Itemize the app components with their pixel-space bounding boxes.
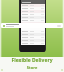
button[interactable] [21, 36, 45, 39]
button[interactable] [21, 7, 45, 10]
button[interactable] [21, 39, 45, 42]
button[interactable] [21, 19, 45, 22]
button[interactable] [21, 4, 45, 7]
button[interactable] [21, 42, 45, 45]
button[interactable] [1, 23, 63, 28]
button[interactable] [21, 13, 45, 16]
button[interactable] [21, 16, 45, 19]
button[interactable] [21, 0, 45, 4]
staticText: Store [2, 65, 62, 70]
staticText: Flexible Delivery [2, 57, 62, 64]
button[interactable] [21, 10, 45, 13]
button[interactable] [19, 0, 46, 52]
button[interactable] [21, 30, 45, 33]
button[interactable] [21, 33, 45, 36]
button[interactable] [21, 22, 45, 25]
